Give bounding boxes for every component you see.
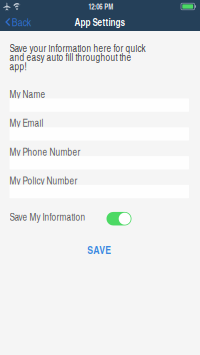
staticText: My Name (9, 87, 45, 101)
staticText: My Email (9, 116, 43, 130)
staticText: Save My Information (9, 210, 85, 223)
staticText: App Settings (74, 15, 125, 29)
staticText: Save your information here for quick and… (9, 41, 145, 73)
staticText: Back (12, 15, 31, 29)
staticText: My Phone Number (9, 145, 80, 158)
staticText: 12:06 PM (88, 1, 113, 12)
staticText: My Policy Number (9, 173, 77, 187)
staticText: SAVE (87, 242, 111, 257)
button[interactable]: Back (0, 13, 37, 31)
button[interactable]: SAVE (87, 245, 111, 255)
button[interactable]: Save My Information (106, 210, 131, 223)
